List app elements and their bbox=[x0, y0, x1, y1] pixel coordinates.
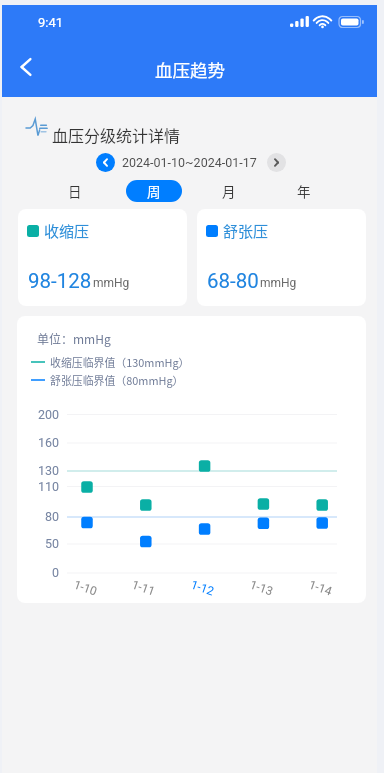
staticText: 110 bbox=[19, 479, 59, 494]
button[interactable]: 周 bbox=[126, 180, 182, 202]
staticText: 1-11 bbox=[118, 574, 168, 602]
staticText: 单位：mmHg bbox=[37, 330, 111, 347]
staticText: 1-14 bbox=[295, 574, 345, 602]
staticText: 1-10 bbox=[60, 574, 110, 602]
button[interactable]: 月 bbox=[211, 180, 247, 202]
staticText: mmHg bbox=[260, 276, 297, 290]
button[interactable]: Back bbox=[4, 45, 48, 89]
staticText: 68-80 bbox=[207, 269, 259, 293]
staticText: 0 bbox=[19, 565, 59, 580]
staticText: 收缩压 bbox=[44, 220, 90, 242]
staticText: mmHg bbox=[93, 276, 130, 290]
staticText: 舒张压临界值（80mmHg） bbox=[50, 372, 184, 388]
button[interactable]: 舒张压 bbox=[197, 209, 366, 306]
button[interactable]: Next period bbox=[267, 153, 286, 172]
button[interactable]: 日 bbox=[57, 180, 93, 202]
staticText: 2024-01-10~2024-01-17 bbox=[122, 155, 257, 170]
staticText: 200 bbox=[19, 407, 59, 422]
staticText: 血压趋势 bbox=[155, 57, 225, 82]
staticText: 舒张压 bbox=[223, 220, 269, 242]
staticText: 日 bbox=[68, 181, 82, 201]
staticText: 98-128 bbox=[28, 269, 92, 293]
staticText: 130 bbox=[19, 463, 59, 478]
staticText: 收缩压临界值（130mmHg） bbox=[50, 354, 190, 370]
staticText: 50 bbox=[19, 536, 59, 551]
staticText: 160 bbox=[19, 435, 59, 450]
staticText: 9:41 bbox=[38, 15, 64, 30]
button[interactable]: Previous period bbox=[96, 153, 115, 172]
staticText: 80 bbox=[19, 509, 59, 524]
staticText: 年 bbox=[297, 181, 311, 201]
staticText: 周 bbox=[147, 181, 161, 201]
button[interactable]: 收缩压 bbox=[18, 209, 187, 306]
button[interactable]: 年 bbox=[286, 180, 322, 202]
staticText: 血压分级统计详情 bbox=[52, 123, 181, 146]
staticText: 月 bbox=[222, 181, 236, 201]
staticText: 1-12 bbox=[177, 574, 227, 602]
staticText: 1-13 bbox=[236, 574, 286, 602]
